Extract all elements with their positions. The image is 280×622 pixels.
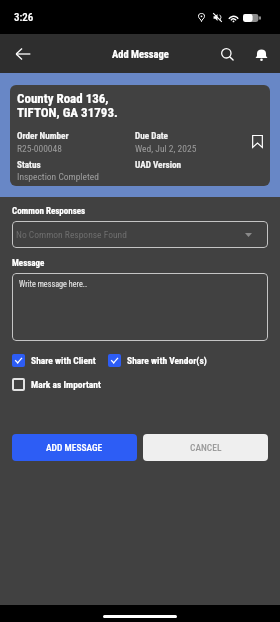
staticText: Wed, Jul 2, 2025: [135, 143, 197, 154]
staticText: Mark as Important: [31, 379, 101, 390]
button[interactable]: ADD MESSAGE: [12, 434, 137, 461]
staticText: Share with Client: [31, 355, 96, 366]
button[interactable]: Share with Client: [12, 354, 108, 367]
staticText: Share with Vendor(s): [127, 355, 207, 366]
staticText: County Road 136, TIFTON, GA 31793.: [17, 91, 118, 120]
staticText: Order Number: [17, 130, 69, 141]
staticText: Inspection Completed: [17, 171, 99, 182]
staticText: Status: [17, 159, 41, 170]
staticText: Due Date: [135, 130, 168, 141]
button[interactable]: Write message here..: [12, 273, 268, 341]
button[interactable]: Share with Vendor(s): [108, 354, 207, 367]
button[interactable]: CANCEL: [143, 434, 268, 461]
button[interactable]: No Common Response Found: [12, 221, 268, 248]
staticText: Write message here..: [19, 279, 88, 289]
staticText: ADD MESSAGE: [46, 442, 103, 453]
staticText: 3:26: [14, 11, 34, 24]
staticText: UAD Version: [135, 159, 182, 170]
staticText: Add Message: [112, 48, 169, 60]
staticText: Common Responses: [12, 206, 86, 217]
button[interactable]: Bookmark: [246, 130, 268, 152]
staticText: Message: [12, 258, 45, 269]
staticText: No Common Response Found: [16, 229, 127, 240]
button[interactable]: Mark as Important: [12, 378, 101, 391]
button[interactable]: Notifications: [242, 35, 280, 73]
button[interactable]: Back: [3, 34, 43, 73]
button[interactable]: County Road 136, TIFTON, GA 31793.: [10, 85, 270, 186]
staticText: R25-000048: [17, 143, 62, 154]
button[interactable]: Search: [208, 35, 246, 73]
staticText: CANCEL: [190, 442, 222, 453]
